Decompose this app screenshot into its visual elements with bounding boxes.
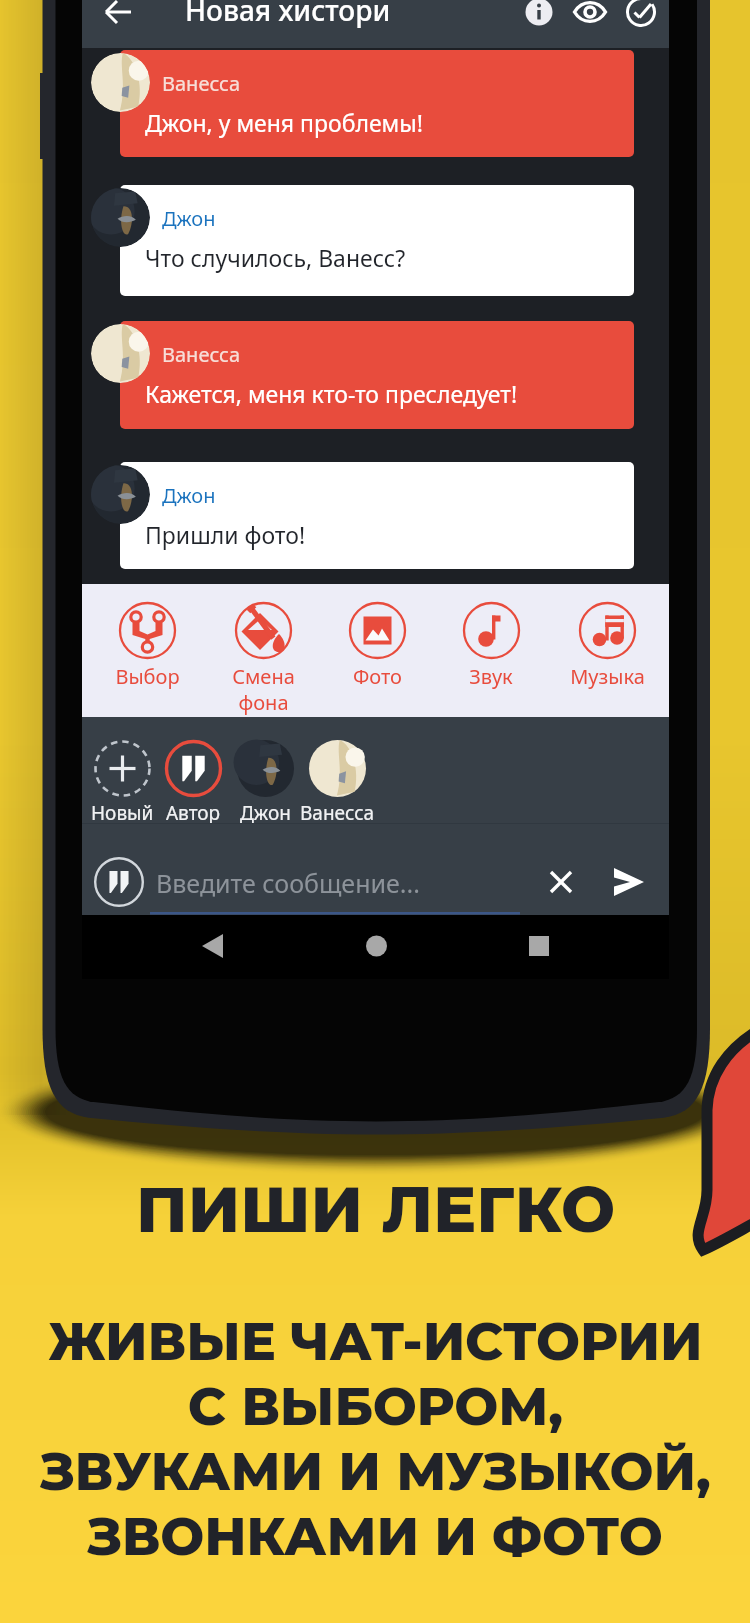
button[interactable]: Done	[617, 0, 665, 36]
staticText: Джон	[162, 205, 216, 232]
button[interactable]: Ванесса	[120, 50, 634, 157]
button[interactable]: Ванесса	[282, 740, 392, 797]
staticText: Фото	[353, 663, 402, 690]
staticText: Автор	[166, 800, 221, 826]
staticText: Джон	[240, 800, 291, 826]
button[interactable]: Info	[515, 0, 563, 36]
staticText: Ванесса	[162, 70, 241, 97]
staticText: Что случилось, Ванесс?	[145, 242, 406, 273]
staticText: Ванесса	[300, 800, 375, 826]
staticText: ЗВУКАМИ И МУЗЫКОЙ,	[40, 1440, 711, 1503]
staticText: Новый	[91, 800, 154, 826]
button[interactable]: Preview	[566, 0, 614, 36]
staticText: Новая хистори	[185, 0, 391, 29]
staticText: Пришли фото!	[145, 519, 306, 550]
button[interactable]: Ванесса	[120, 321, 634, 429]
staticText: Джон	[162, 482, 216, 509]
button[interactable]: Author	[94, 857, 144, 907]
staticText: С ВЫБОРОМ,	[188, 1375, 563, 1438]
button[interactable]: Звук	[433, 584, 549, 717]
button[interactable]: Фото	[319, 584, 435, 717]
staticText: Введите сообщение...	[156, 866, 420, 900]
staticText: ПИШИ ЛЕГКО	[136, 1170, 615, 1248]
button[interactable]: Автор	[138, 740, 248, 797]
button[interactable]: Новый	[67, 740, 177, 797]
button[interactable]: Смена фона	[205, 584, 321, 717]
staticText: ЗВОНКАМИ И ФОТО	[87, 1505, 663, 1568]
button[interactable]: Музыка	[549, 584, 665, 717]
button[interactable]: Выбор	[89, 584, 205, 717]
staticText: Смена фона	[232, 663, 295, 716]
staticText: ЖИВЫЕ ЧАТ-ИСТОРИИ	[48, 1310, 703, 1373]
staticText: Джон, у меня проблемы!	[145, 107, 423, 138]
staticText: Кажется, меня кто-то преследует!	[145, 378, 518, 409]
button[interactable]: Джон	[210, 740, 320, 797]
button[interactable]: Back	[95, 0, 143, 36]
button[interactable]: Send	[606, 860, 650, 904]
staticText: Выбор	[115, 663, 180, 690]
button[interactable]: Джон	[120, 462, 634, 569]
button[interactable]: Джон	[120, 185, 634, 296]
staticText: Ванесса	[162, 341, 241, 368]
button[interactable]: Clear	[539, 860, 583, 904]
staticText: Звук	[469, 663, 513, 690]
staticText: Музыка	[570, 663, 645, 690]
